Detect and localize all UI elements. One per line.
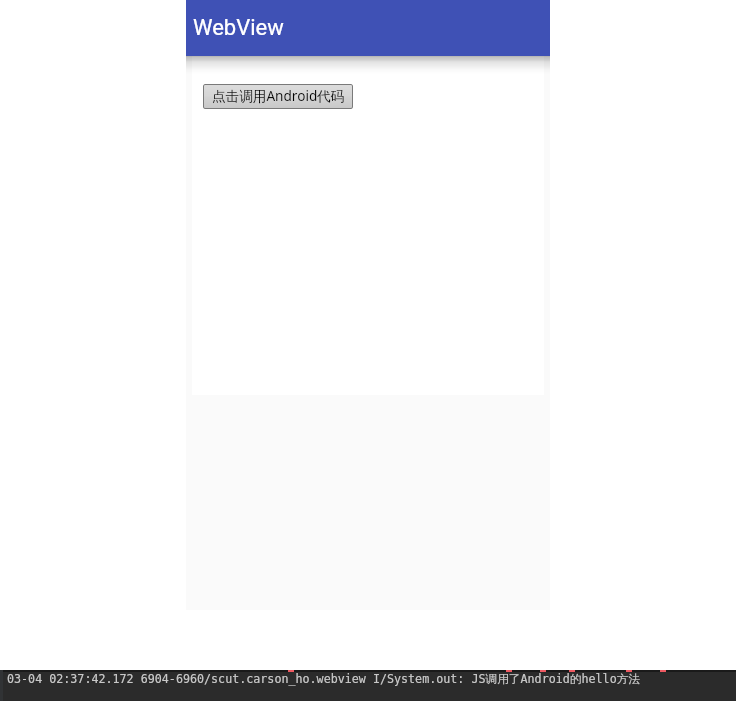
staticText: 点击调用Android代码	[212, 86, 345, 105]
button[interactable]: 点击调用Android代码	[203, 84, 353, 109]
staticText: WebView	[193, 15, 284, 41]
staticText: 03-04 02:37:42.172 6904-6960/scut.carson…	[7, 672, 641, 687]
